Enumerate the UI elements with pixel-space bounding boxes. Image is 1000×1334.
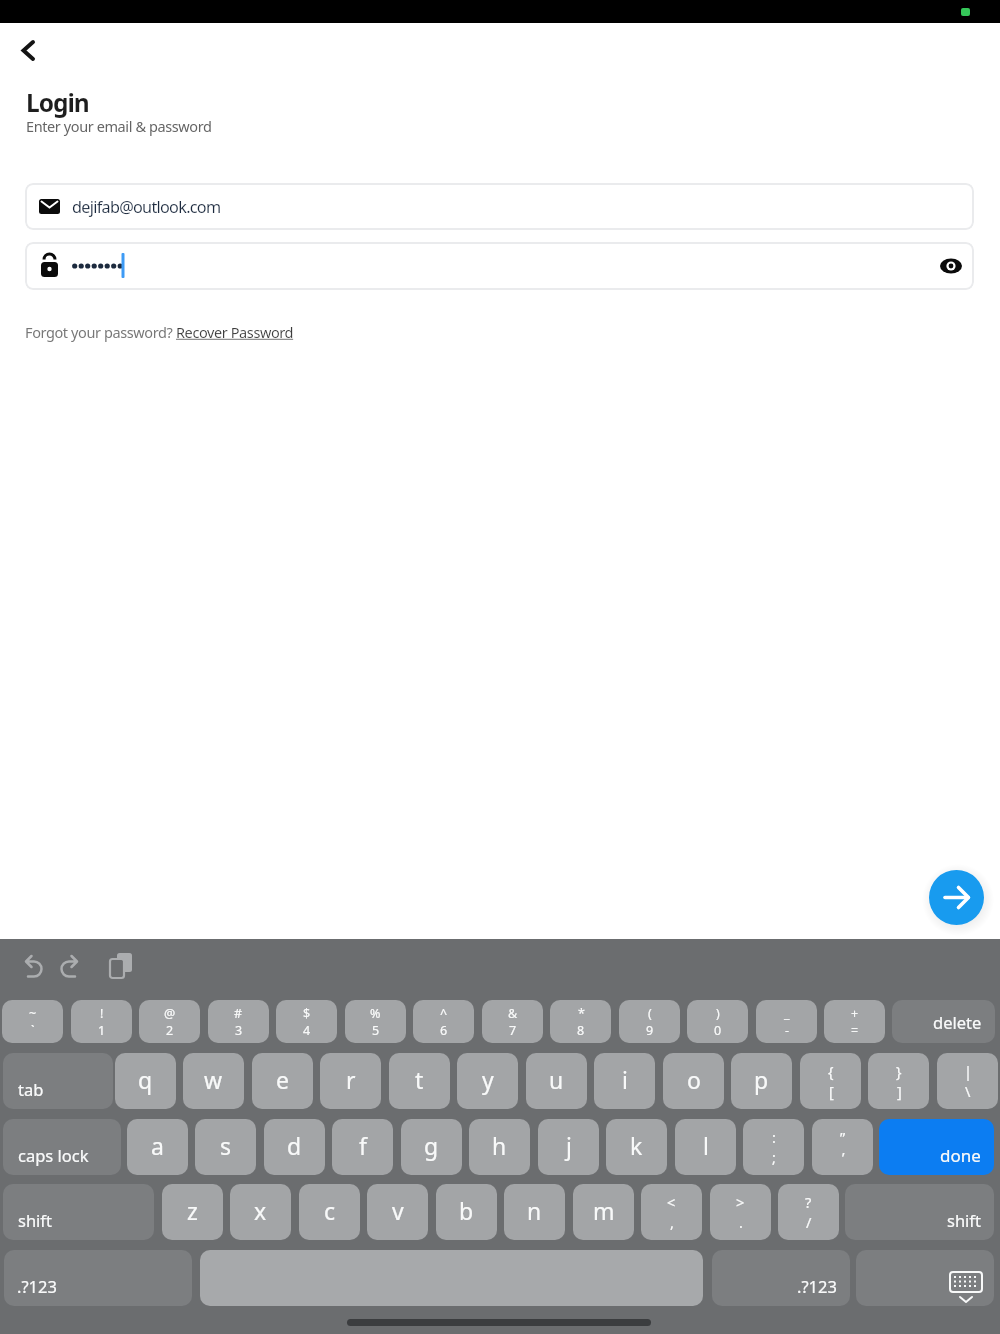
button[interactable]: { [800, 1053, 861, 1109]
button[interactable]: o [663, 1053, 724, 1109]
button[interactable]: ” [812, 1119, 873, 1175]
staticText: > [736, 1192, 745, 1212]
staticText: { [828, 1061, 834, 1081]
staticText: } [896, 1061, 902, 1081]
staticText: 3 [235, 1022, 243, 1039]
button[interactable]: c [299, 1184, 360, 1240]
button[interactable]: .?123 [712, 1250, 850, 1306]
button[interactable]: | [937, 1053, 998, 1109]
button[interactable]: * [550, 1000, 611, 1043]
staticText: Enter your email & password [26, 116, 212, 136]
staticText: v [392, 1195, 404, 1226]
staticText: ` [31, 1022, 35, 1039]
staticText: ] [897, 1081, 902, 1101]
button[interactable]: p [731, 1053, 792, 1109]
button[interactable]: % [345, 1000, 406, 1043]
staticText: c [324, 1195, 336, 1226]
staticText: shift [947, 1209, 981, 1231]
button[interactable]: shift [845, 1184, 994, 1240]
staticText: r [346, 1064, 356, 1095]
button[interactable]: f [332, 1119, 393, 1175]
button[interactable]: tab [3, 1053, 113, 1109]
button[interactable]: delete [892, 1000, 995, 1043]
button[interactable]: dejifab@outlook.com [25, 183, 974, 230]
button[interactable] [25, 242, 974, 290]
button[interactable]: caps lock [3, 1119, 121, 1175]
staticText: Forgot your password? [25, 322, 176, 342]
staticText: - [785, 1022, 790, 1039]
staticText: : [772, 1127, 776, 1147]
staticText: % [370, 1005, 381, 1022]
staticText: Login [26, 86, 89, 119]
button[interactable]: y [457, 1053, 518, 1109]
button[interactable]: done [879, 1119, 994, 1175]
button[interactable]: j [538, 1119, 599, 1175]
staticText: 6 [440, 1022, 448, 1039]
button[interactable]: ! [71, 1000, 132, 1043]
button[interactable]: ) [687, 1000, 748, 1043]
button[interactable]: ? [778, 1184, 839, 1240]
button[interactable]: a [127, 1119, 188, 1175]
button[interactable]: < [641, 1184, 702, 1240]
button[interactable]: ~ [2, 1000, 63, 1043]
staticText: # [234, 1005, 243, 1022]
button[interactable] [856, 1250, 994, 1306]
button[interactable]: n [504, 1184, 565, 1240]
button[interactable]: + [824, 1000, 885, 1043]
button[interactable]: > [710, 1184, 771, 1240]
button[interactable] [200, 1250, 703, 1306]
button[interactable]: w [183, 1053, 244, 1109]
button[interactable]: ( [619, 1000, 680, 1043]
button[interactable]: u [526, 1053, 587, 1109]
staticText: shift [18, 1209, 52, 1231]
button[interactable]: m [573, 1184, 634, 1240]
button[interactable]: $ [276, 1000, 337, 1043]
button[interactable]: q [115, 1053, 176, 1109]
staticText: q [138, 1064, 153, 1095]
staticText: < [667, 1192, 676, 1212]
staticText: x [254, 1195, 267, 1226]
button[interactable]: & [482, 1000, 543, 1043]
staticText: [ [829, 1081, 834, 1101]
button[interactable]: t [389, 1053, 450, 1109]
staticText: a [151, 1130, 164, 1161]
button[interactable]: ^ [413, 1000, 474, 1043]
staticText: ’ [842, 1147, 845, 1167]
button[interactable]: @ [139, 1000, 200, 1043]
button[interactable]: e [252, 1053, 313, 1109]
staticText: l [703, 1130, 709, 1161]
staticText: d [287, 1130, 302, 1161]
button[interactable]: # [208, 1000, 269, 1043]
staticText: ( [648, 1005, 652, 1022]
staticText: ) [716, 1005, 720, 1022]
staticText: * [578, 1005, 585, 1022]
button[interactable]: d [264, 1119, 325, 1175]
staticText: s [220, 1130, 232, 1161]
button[interactable] [929, 870, 984, 925]
button[interactable]: s [195, 1119, 256, 1175]
button[interactable]: shift [3, 1184, 154, 1240]
button[interactable]: _ [756, 1000, 817, 1043]
staticText: & [508, 1005, 518, 1022]
staticText: f [359, 1130, 367, 1161]
button[interactable]: k [606, 1119, 667, 1175]
staticText: j [566, 1130, 572, 1161]
button[interactable]: i [594, 1053, 655, 1109]
button[interactable]: : [743, 1119, 804, 1175]
button[interactable]: x [230, 1184, 291, 1240]
button[interactable]: } [868, 1053, 929, 1109]
button[interactable]: g [401, 1119, 462, 1175]
staticText: p [754, 1064, 769, 1095]
button[interactable]: b [436, 1184, 497, 1240]
staticText: ” [840, 1127, 846, 1147]
button[interactable]: r [320, 1053, 381, 1109]
button[interactable]: .?123 [4, 1250, 192, 1306]
button[interactable] [12, 36, 44, 66]
button[interactable]: l [675, 1119, 736, 1175]
button[interactable]: Recover Password [176, 322, 294, 342]
button[interactable]: h [469, 1119, 530, 1175]
button[interactable]: z [162, 1184, 223, 1240]
button[interactable]: v [367, 1184, 428, 1240]
staticText: h [492, 1130, 507, 1161]
staticText: ; [772, 1147, 776, 1167]
